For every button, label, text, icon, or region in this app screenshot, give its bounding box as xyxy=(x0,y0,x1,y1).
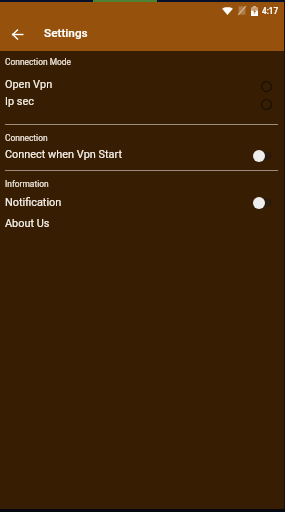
staticText: Connection Mode xyxy=(5,57,71,67)
staticText: Notification xyxy=(5,196,62,209)
button[interactable]: Notification xyxy=(0,191,285,213)
staticText: Settings xyxy=(44,26,88,40)
staticText: About Us xyxy=(5,217,50,230)
staticText: Connect when Vpn Start xyxy=(5,148,122,161)
staticText: Ip sec xyxy=(5,95,34,108)
button[interactable]: Connect when Vpn Start xyxy=(0,143,285,165)
button[interactable]: Open Vpn xyxy=(0,73,285,95)
button[interactable]: Ip sec xyxy=(0,90,285,112)
staticText: Open Vpn xyxy=(5,78,53,91)
button[interactable]: Back xyxy=(5,22,29,46)
button[interactable]: About Us xyxy=(0,212,285,234)
staticText: 4:17 xyxy=(262,6,279,16)
staticText: Connection xyxy=(5,133,48,143)
staticText: Information xyxy=(5,179,49,189)
